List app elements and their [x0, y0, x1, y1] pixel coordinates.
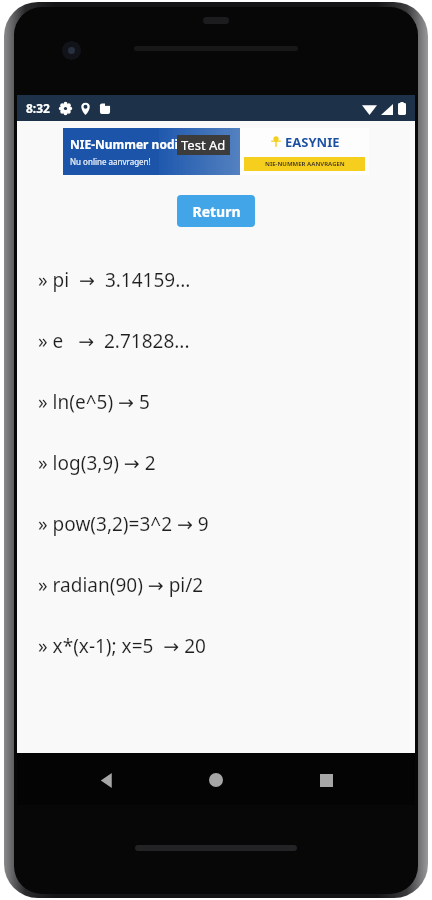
button[interactable]: Home [195, 759, 237, 801]
button[interactable]: » radian(90) → pi/2 [17, 554, 415, 615]
staticText: » radian(90) → pi/2 [38, 572, 204, 598]
button[interactable]: Recent apps [305, 759, 347, 801]
button[interactable]: » ln(e^5) → 5 [17, 371, 415, 432]
staticText: » x*(x-1); x=5 → 20 [38, 633, 206, 659]
staticText: NIE-NUMMER AANVRAGEN [265, 160, 345, 168]
button[interactable]: Back [85, 759, 127, 801]
staticText: 8:32 [26, 100, 50, 116]
staticText: NIE-Nummer nodig? [70, 136, 192, 152]
button[interactable]: » log(3,9) → 2 [17, 432, 415, 493]
staticText: » log(3,9) → 2 [38, 450, 156, 476]
staticText: Nu online aanvragen! [70, 156, 151, 167]
staticText: EASYNIE [285, 133, 340, 151]
staticText: Test Ad [181, 136, 226, 154]
staticText: » pi → 3.14159... [38, 267, 191, 293]
staticText: Return [192, 202, 241, 221]
button[interactable]: Return [177, 195, 255, 227]
button[interactable]: » pow(3,2)=3^2 → 9 [17, 493, 415, 554]
button[interactable]: » x*(x-1); x=5 → 20 [17, 615, 415, 676]
staticText: » ln(e^5) → 5 [38, 389, 150, 415]
button[interactable]: » pi → 3.14159... [17, 249, 415, 310]
button[interactable]: NIE-Nummer nodig? [63, 128, 369, 175]
staticText: » e → 2.71828... [38, 328, 190, 354]
staticText: » pow(3,2)=3^2 → 9 [38, 511, 209, 537]
button[interactable]: » e → 2.71828... [17, 310, 415, 371]
